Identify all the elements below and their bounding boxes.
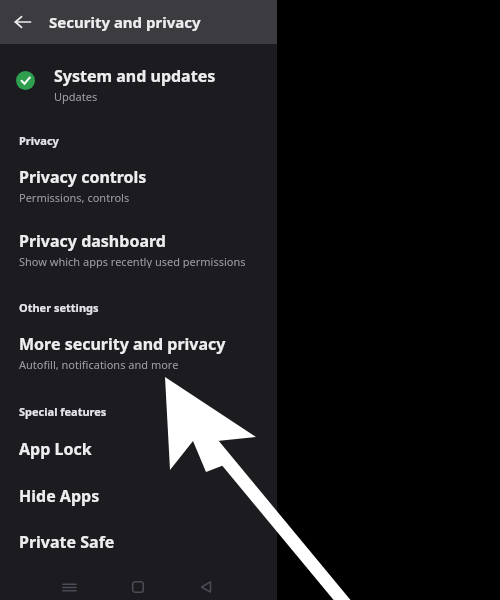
- button[interactable]: System and updates: [0, 60, 277, 104]
- staticText: Privacy dashboard: [19, 230, 166, 252]
- staticText: Private Safe: [19, 531, 115, 553]
- staticText: Show which apps recently used permission…: [19, 254, 246, 268]
- staticText: System and updates: [54, 65, 216, 87]
- staticText: Privacy: [19, 133, 59, 148]
- button[interactable]: Hide Apps: [0, 481, 277, 507]
- staticText: Security and privacy: [49, 12, 201, 32]
- staticText: Permissions, controls: [19, 190, 130, 204]
- button[interactable]: Recent apps: [55, 573, 83, 600]
- staticText: App Lock: [19, 438, 92, 460]
- staticText: Hide Apps: [19, 485, 100, 507]
- button[interactable]: Back: [8, 7, 38, 37]
- button[interactable]: Privacy dashboard: [0, 226, 277, 268]
- staticText: Privacy controls: [19, 166, 147, 188]
- button[interactable]: Back: [192, 573, 220, 600]
- button[interactable]: Private Safe: [0, 527, 277, 553]
- staticText: Other settings: [19, 300, 99, 315]
- button[interactable]: App Lock: [0, 434, 277, 460]
- staticText: More security and privacy: [19, 333, 226, 355]
- staticText: Updates: [54, 89, 98, 104]
- staticText: Autofill, notifications and more: [19, 357, 179, 371]
- button[interactable]: Privacy controls: [0, 162, 277, 204]
- button[interactable]: More security and privacy: [0, 329, 277, 371]
- button[interactable]: Home: [124, 573, 152, 600]
- staticText: Special features: [19, 404, 107, 419]
